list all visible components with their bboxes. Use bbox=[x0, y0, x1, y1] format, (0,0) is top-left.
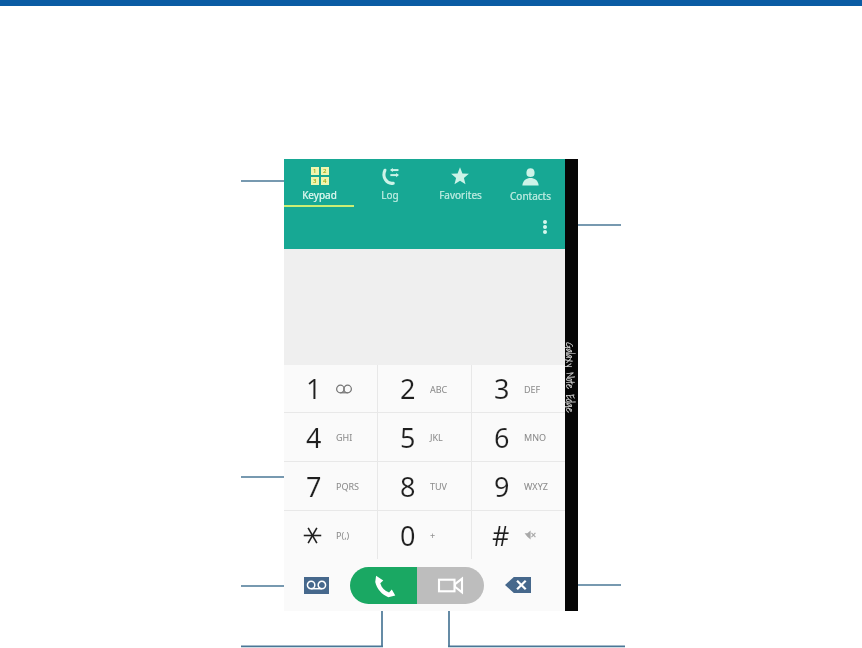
staticText: 1 bbox=[313, 167, 317, 175]
button[interactable]: 6 bbox=[472, 413, 565, 461]
button[interactable]: 2 bbox=[378, 365, 471, 412]
staticText: 6 bbox=[494, 419, 510, 456]
staticText: Log bbox=[381, 188, 399, 202]
staticText: Favorites bbox=[439, 188, 482, 202]
button[interactable]: # bbox=[472, 511, 565, 559]
button[interactable]: Backspace bbox=[505, 577, 531, 593]
button[interactable]: Log bbox=[355, 159, 425, 203]
staticText: 4 bbox=[323, 177, 327, 185]
button[interactable]: 5 bbox=[378, 413, 471, 461]
button[interactable]: P(,) bbox=[284, 511, 377, 559]
staticText: 0 bbox=[400, 517, 416, 554]
staticText: 8 bbox=[400, 468, 416, 505]
button[interactable]: Video call bbox=[417, 567, 484, 604]
staticText: P(,) bbox=[336, 529, 350, 541]
button[interactable]: 7 bbox=[284, 462, 377, 510]
staticText: 9 bbox=[494, 468, 510, 505]
button[interactable]: 8 bbox=[378, 462, 471, 510]
staticText: TUV bbox=[430, 480, 447, 492]
staticText: 2 bbox=[323, 167, 327, 175]
staticText: PQRS bbox=[336, 480, 360, 492]
staticText: Galaxy Note Edge bbox=[565, 342, 579, 413]
button[interactable]: 3 bbox=[472, 365, 565, 412]
staticText: Contacts bbox=[510, 189, 551, 203]
staticText: 3 bbox=[313, 177, 317, 185]
staticText: 1 bbox=[306, 370, 322, 407]
staticText: 5 bbox=[400, 419, 416, 456]
button[interactable]: 9 bbox=[472, 462, 565, 510]
button[interactable]: 4 bbox=[284, 413, 377, 461]
staticText: WXYZ bbox=[524, 480, 548, 492]
button[interactable]: Favorites bbox=[425, 159, 495, 203]
staticText: 3 bbox=[494, 370, 510, 407]
staticText: MNO bbox=[524, 431, 547, 443]
button[interactable]: 0 bbox=[378, 511, 471, 559]
button[interactable]: Call bbox=[350, 567, 417, 604]
button[interactable]: Voicemail bbox=[304, 577, 329, 594]
button[interactable]: 1 bbox=[284, 365, 377, 412]
staticText: ABC bbox=[430, 383, 448, 395]
staticText: # bbox=[492, 517, 510, 554]
staticText: GHI bbox=[336, 431, 353, 443]
staticText: DEF bbox=[524, 383, 541, 395]
staticText: 2 bbox=[400, 370, 416, 407]
button[interactable]: More options bbox=[534, 216, 556, 238]
staticText: Keypad bbox=[302, 188, 337, 202]
button[interactable]: Contacts bbox=[495, 159, 565, 203]
button[interactable]: 1 bbox=[284, 159, 355, 203]
staticText: 4 bbox=[306, 419, 322, 456]
staticText: + bbox=[430, 529, 436, 541]
staticText: 7 bbox=[306, 468, 322, 505]
staticText: JKL bbox=[430, 431, 443, 443]
